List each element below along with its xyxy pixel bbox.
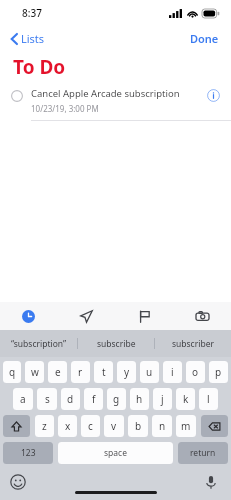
button[interactable]: Dictate xyxy=(203,474,219,490)
button[interactable]: Backspace xyxy=(201,415,228,437)
button[interactable]: Lists xyxy=(8,28,48,49)
button[interactable]: x xyxy=(58,415,77,437)
button[interactable]: r xyxy=(71,361,90,383)
button[interactable]: a xyxy=(13,388,33,410)
staticText: z xyxy=(42,419,47,433)
button[interactable]: p xyxy=(209,361,228,383)
button[interactable]: z xyxy=(35,415,54,437)
button[interactable]: f xyxy=(84,388,103,410)
staticText: return xyxy=(190,447,216,459)
button[interactable]: subscribe xyxy=(78,330,154,357)
staticText: b xyxy=(135,419,142,433)
button[interactable]: “subscription” xyxy=(0,330,77,357)
button[interactable]: t xyxy=(94,361,113,383)
button[interactable]: Details xyxy=(206,88,221,103)
button[interactable]: h xyxy=(130,388,149,410)
staticText: space xyxy=(104,447,127,459)
button[interactable]: Remind me at a location xyxy=(57,302,115,330)
staticText: j xyxy=(161,392,164,406)
staticText: f xyxy=(92,392,96,406)
button[interactable]: Done xyxy=(186,28,223,49)
button[interactable]: Emoji xyxy=(10,474,26,490)
button[interactable]: 123 xyxy=(3,442,53,464)
button[interactable]: j xyxy=(153,388,172,410)
button[interactable]: q xyxy=(3,361,21,383)
staticText: h xyxy=(136,392,143,406)
staticText: “subscription” xyxy=(11,338,67,350)
button[interactable]: m xyxy=(176,415,196,437)
button[interactable]: Flag xyxy=(115,302,173,330)
staticText: g xyxy=(113,392,120,406)
staticText: Lists xyxy=(21,31,45,46)
staticText: k xyxy=(183,392,189,406)
button[interactable]: s xyxy=(37,388,57,410)
staticText: i xyxy=(171,365,174,379)
button[interactable]: c xyxy=(81,415,100,437)
staticText: y xyxy=(124,365,130,379)
staticText: c xyxy=(88,419,93,433)
button[interactable]: g xyxy=(107,388,126,410)
staticText: subscribe xyxy=(97,338,136,350)
staticText: d xyxy=(67,392,74,406)
staticText: n xyxy=(159,419,166,433)
staticText: s xyxy=(45,392,50,406)
button[interactable]: y xyxy=(117,361,136,383)
staticText: a xyxy=(20,392,26,406)
staticText: l xyxy=(207,392,210,406)
button[interactable]: e xyxy=(48,361,67,383)
button[interactable]: l xyxy=(199,388,218,410)
staticText: p xyxy=(215,365,222,379)
button[interactable]: k xyxy=(176,388,195,410)
staticText: o xyxy=(192,365,199,379)
button[interactable]: i xyxy=(163,361,182,383)
staticText: q xyxy=(9,365,16,379)
button[interactable]: w xyxy=(25,361,44,383)
staticText: x xyxy=(65,419,71,433)
button[interactable]: u xyxy=(140,361,159,383)
staticText: w xyxy=(31,365,39,379)
staticText: v xyxy=(111,419,117,433)
button[interactable]: Cancel Apple Arcade subscription xyxy=(0,87,231,114)
staticText: m xyxy=(181,419,191,433)
button[interactable]: Add photo xyxy=(173,302,231,330)
button[interactable]: o xyxy=(186,361,205,383)
staticText: 123 xyxy=(21,447,36,459)
staticText: Cancel Apple Arcade subscription xyxy=(31,87,180,100)
button[interactable]: d xyxy=(61,388,80,410)
button[interactable]: Remind me at a time xyxy=(0,302,57,330)
staticText: 10/23/19, 3:00 PM xyxy=(31,103,99,114)
staticText: u xyxy=(146,365,153,379)
button[interactable]: n xyxy=(152,415,172,437)
staticText: subscriber xyxy=(172,338,214,350)
button[interactable]: v xyxy=(104,415,124,437)
button[interactable]: Shift xyxy=(3,415,30,437)
staticText: t xyxy=(102,365,106,379)
button[interactable]: b xyxy=(128,415,148,437)
staticText: Done xyxy=(190,31,219,46)
staticText: r xyxy=(78,365,83,379)
staticText: 8:37 xyxy=(22,6,42,20)
button[interactable]: return xyxy=(178,442,228,464)
staticText: To Do xyxy=(13,54,66,80)
button[interactable]: space xyxy=(58,442,173,464)
staticText: e xyxy=(55,365,61,379)
button[interactable]: subscriber xyxy=(155,330,231,357)
